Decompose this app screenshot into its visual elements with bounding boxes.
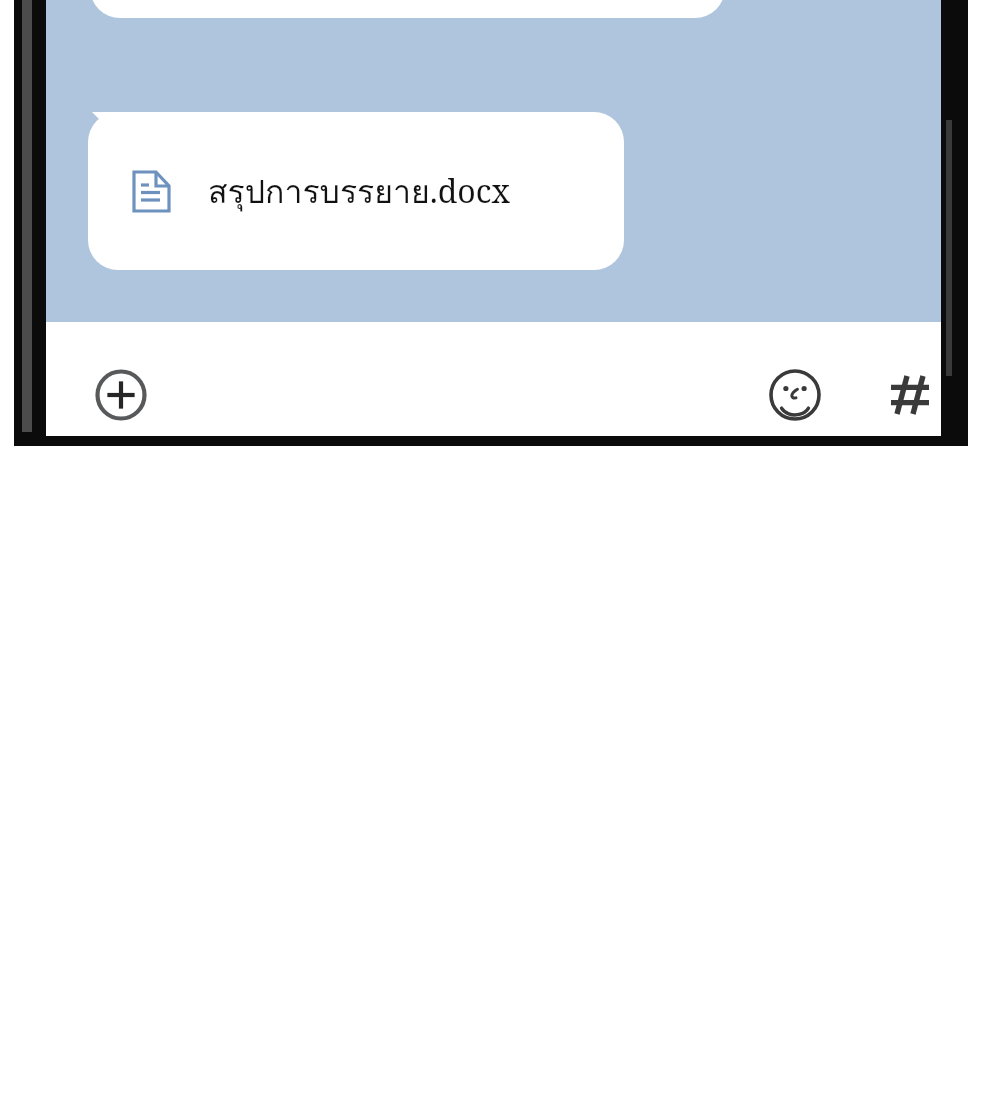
button[interactable]: Stickers bbox=[767, 367, 823, 423]
button[interactable]: Add attachment bbox=[95, 369, 147, 421]
button[interactable]: สรุปการบรรยาย.docx bbox=[88, 112, 624, 270]
staticText: สรุปการบรรยาย.docx bbox=[208, 166, 511, 217]
button[interactable] bbox=[90, 0, 725, 18]
button[interactable]: Hashtag bbox=[882, 367, 938, 423]
